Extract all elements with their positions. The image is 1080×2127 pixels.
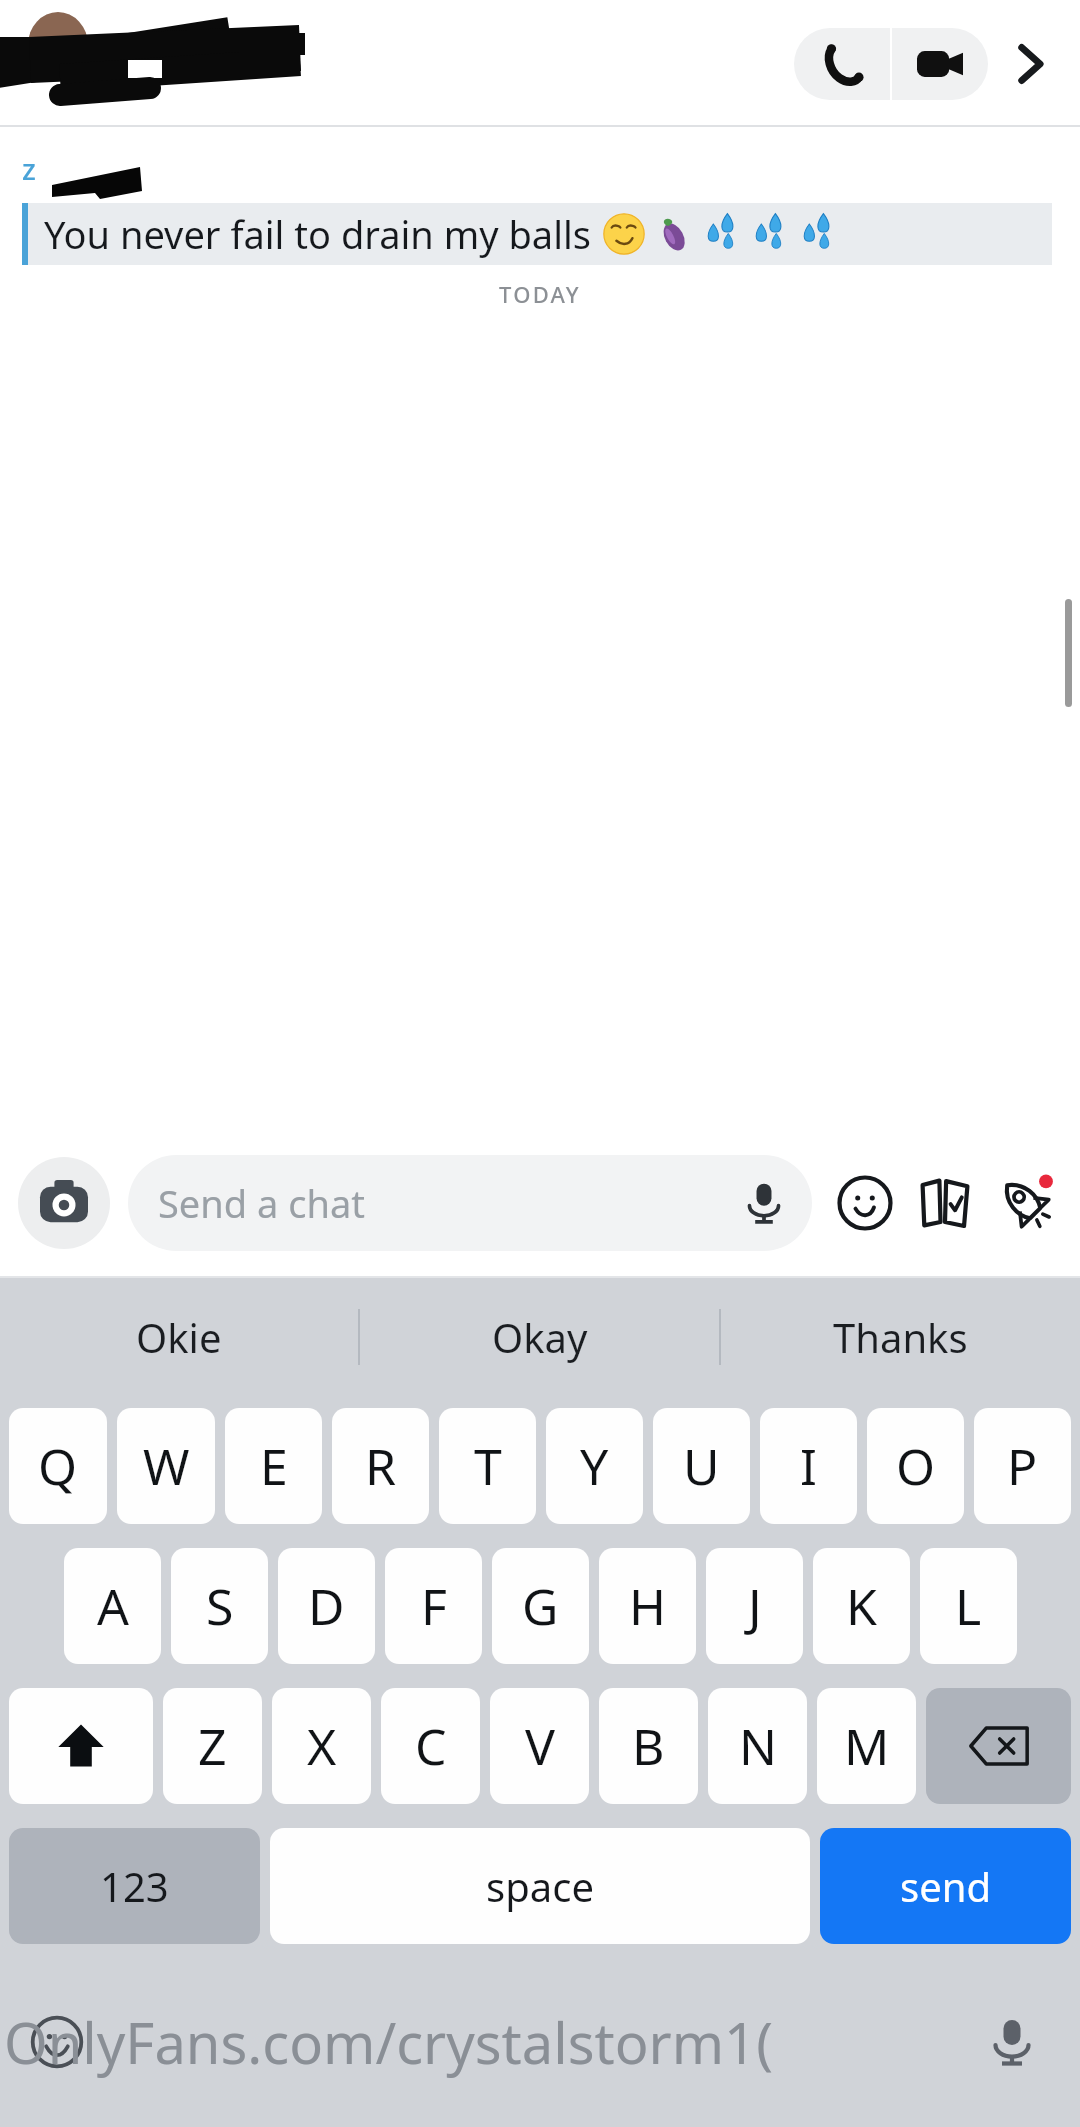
staticText: B [632,1712,665,1780]
button[interactable]: Q [9,1408,107,1524]
button[interactable]: A [64,1548,161,1664]
staticText: Z [198,1712,227,1780]
button[interactable]: Z [163,1688,262,1804]
button[interactable]: Okay [360,1278,719,1396]
button[interactable]: You never fail to drain my balls [22,203,1052,265]
button[interactable]: G [492,1548,589,1664]
button[interactable]: K [813,1548,910,1664]
staticText: G [522,1572,559,1640]
button[interactable]: H [599,1548,696,1664]
staticText: P [1007,1432,1038,1500]
staticText: Q [38,1432,78,1500]
staticText: A [97,1572,129,1640]
staticText: J [748,1572,762,1640]
button[interactable]: Voice input [984,2014,1040,2070]
staticText: send [900,1859,992,1913]
staticText: L [955,1572,982,1640]
button[interactable]: X [272,1688,371,1804]
button[interactable]: Open profile [998,32,1062,96]
button[interactable]: send [820,1828,1071,1944]
staticText: TODAY [0,279,1080,309]
button[interactable]: T [439,1408,536,1524]
button[interactable]: Thanks [721,1278,1080,1396]
staticText: space [486,1859,594,1913]
button[interactable]: 123 [9,1828,260,1944]
button[interactable]: N [708,1688,807,1804]
button[interactable]: J [706,1548,803,1664]
staticText: M [844,1712,890,1780]
button[interactable]: U [653,1408,750,1524]
staticText: V [525,1712,555,1780]
button[interactable]: I [760,1408,857,1524]
staticText: OnlyFans.com/crystalstorm1( [4,2004,773,2080]
button[interactable]: Okie [0,1278,358,1396]
button[interactable]: R [332,1408,429,1524]
button[interactable]: V [490,1688,589,1804]
staticText: W [143,1432,190,1500]
staticText: E [260,1432,288,1500]
button[interactable]: O [867,1408,964,1524]
staticText: You never fail to drain my balls [44,208,591,260]
button[interactable]: B [599,1688,698,1804]
button[interactable]: E [225,1408,322,1524]
staticText: Send a chat [158,1177,742,1229]
staticText: N [739,1712,777,1780]
button[interactable]: F [385,1548,482,1664]
staticText: K [846,1572,877,1640]
button[interactable]: M [817,1688,916,1804]
staticText: U [683,1432,720,1500]
staticText: 123 [100,1859,169,1913]
staticText: R [365,1432,397,1500]
button[interactable]: Voice call [794,28,890,100]
button[interactable]: Rocket [988,1166,1062,1240]
button[interactable]: Video call [892,28,988,100]
staticText: F [421,1572,447,1640]
button[interactable]: S [171,1548,268,1664]
button[interactable]: L [920,1548,1017,1664]
staticText: D [308,1572,345,1640]
button[interactable]: Open camera [18,1157,110,1249]
staticText: z [22,149,36,188]
button[interactable]: D [278,1548,375,1664]
button[interactable]: W [117,1408,215,1524]
button[interactable]: Emoji keyboard [26,2011,88,2073]
staticText: X [307,1712,337,1780]
staticText: Y [580,1432,609,1500]
button[interactable]: Send a chat [128,1155,812,1251]
staticText: Okie [136,1310,222,1364]
staticText: T [474,1432,502,1500]
button[interactable]: Backspace [926,1688,1071,1804]
button[interactable]: C [381,1688,480,1804]
button[interactable]: Gallery [908,1166,982,1240]
staticText: S [206,1572,234,1640]
button[interactable]: space [270,1828,810,1944]
staticText: H [629,1572,667,1640]
button[interactable]: Stickers [828,1166,902,1240]
button[interactable]: Y [546,1408,643,1524]
staticText: Okay [492,1310,588,1364]
staticText: O [896,1432,936,1500]
staticText: Thanks [833,1310,968,1364]
staticText: C [415,1712,447,1780]
staticText: I [800,1432,817,1500]
button[interactable]: Shift [9,1688,153,1804]
button[interactable]: P [974,1408,1071,1524]
